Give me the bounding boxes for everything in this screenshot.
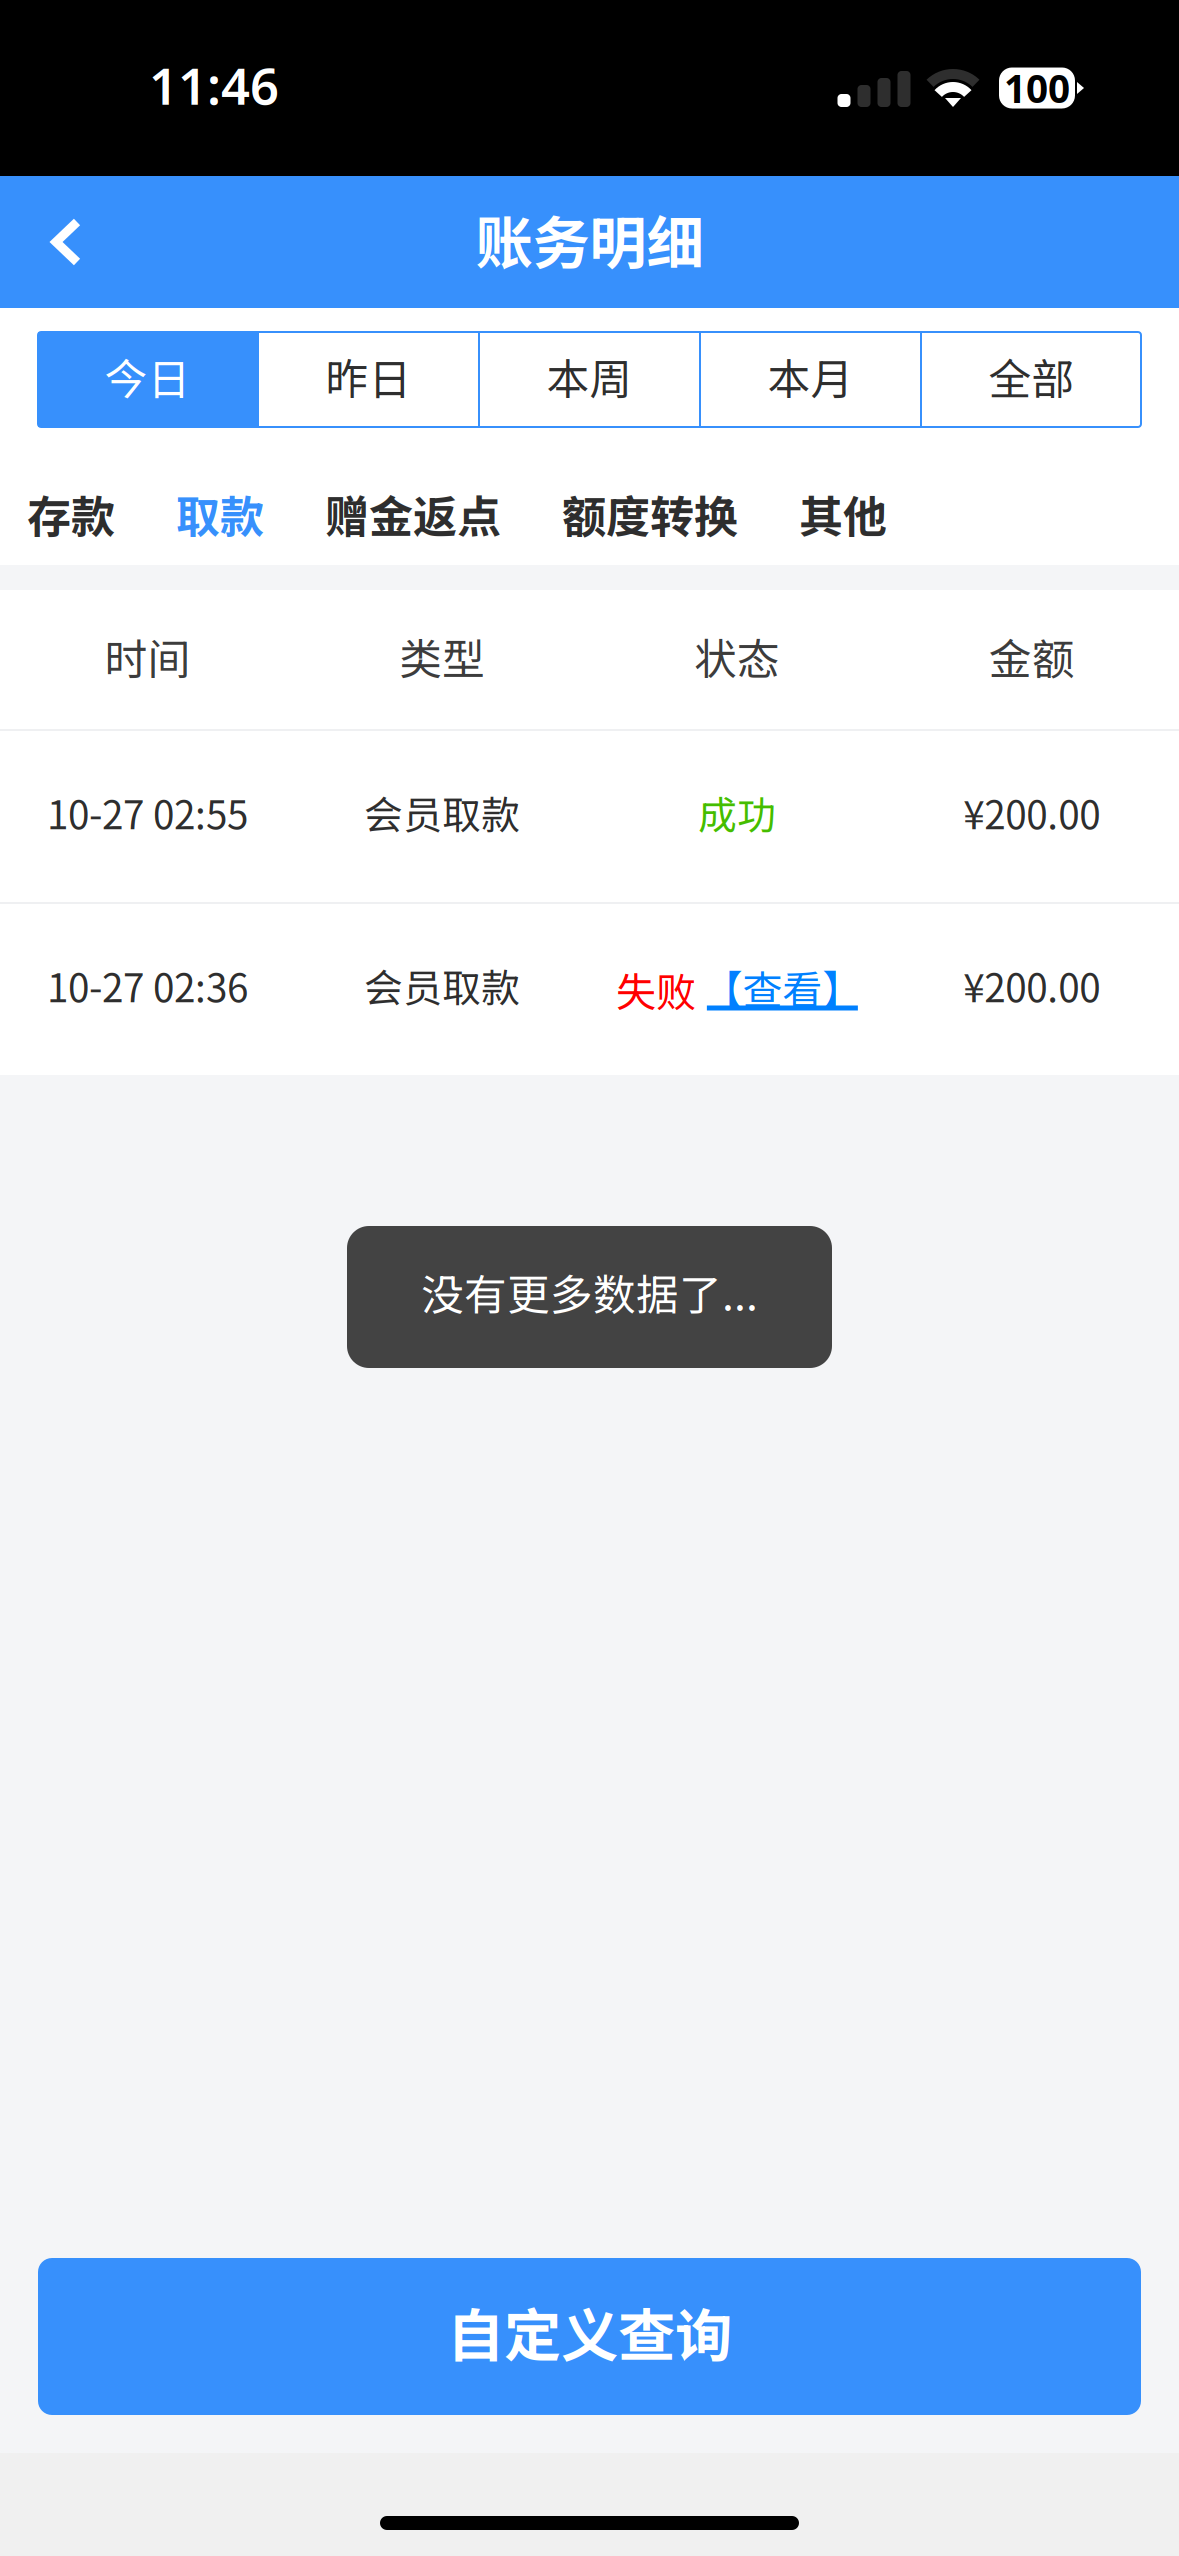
button[interactable]: 今日 [38, 332, 257, 427]
button[interactable]: 额度转换 [562, 482, 738, 546]
staticText: 11:46 [149, 51, 279, 119]
staticText: 类型 [399, 626, 485, 687]
button[interactable]: 赠金返点 [325, 482, 501, 546]
staticText: 10-27 02:55 [47, 784, 248, 840]
staticText: 100 [1004, 62, 1070, 114]
staticText: 自定义查询 [447, 2290, 732, 2373]
staticText: 【查看】 [702, 959, 862, 1016]
button[interactable]: 取款 [176, 482, 264, 546]
button[interactable]: 本月 [701, 332, 920, 427]
staticText: 会员取款 [364, 784, 520, 840]
button[interactable]: 自定义查询 [38, 2258, 1141, 2415]
staticText: 今日 [104, 346, 190, 407]
button[interactable]: 查看 [707, 965, 858, 1013]
staticText: 存款 [27, 482, 115, 546]
staticText: 取款 [176, 482, 264, 546]
button[interactable]: 存款 [27, 482, 115, 546]
button[interactable]: 返回 [0, 176, 133, 308]
staticText: 本月 [767, 346, 853, 407]
staticText: 赠金返点 [325, 482, 501, 546]
staticText: 本周 [546, 346, 632, 407]
button[interactable]: 全部 [922, 332, 1141, 427]
button[interactable]: 本周 [480, 332, 699, 427]
staticText: 金额 [989, 626, 1075, 687]
staticText: 时间 [104, 626, 190, 687]
staticText: 昨日 [325, 346, 411, 407]
button[interactable]: 其他 [799, 482, 887, 546]
staticText: 10-27 02:36 [47, 957, 248, 1013]
staticText: ¥200.00 [963, 784, 1100, 840]
staticText: 会员取款 [364, 957, 520, 1013]
staticText: 成功 [698, 784, 776, 840]
staticText: 失败 [616, 960, 696, 1018]
staticText: 状态 [694, 626, 780, 687]
staticText: 额度转换 [562, 482, 738, 546]
staticText: 没有更多数据了... [421, 1261, 758, 1323]
staticText: 全部 [988, 346, 1074, 407]
staticText: 其他 [799, 482, 887, 546]
staticText: 账务明细 [475, 197, 703, 280]
staticText: ¥200.00 [963, 957, 1100, 1013]
button[interactable]: 昨日 [259, 332, 478, 427]
